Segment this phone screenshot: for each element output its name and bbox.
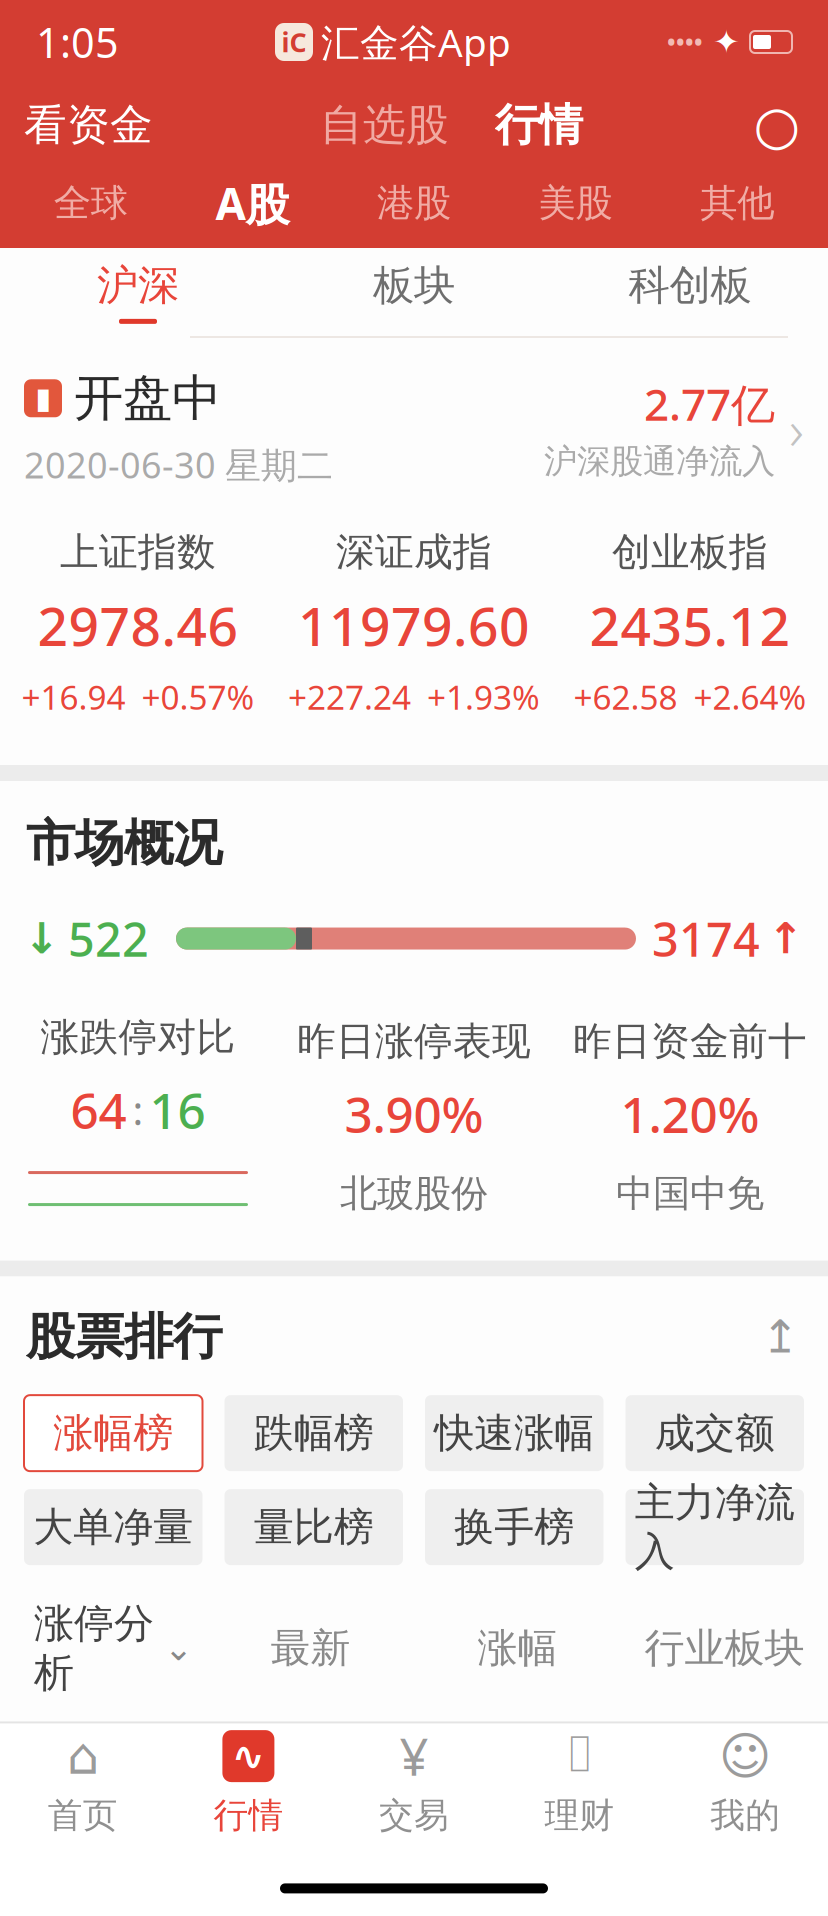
button[interactable]: 深证成指	[276, 528, 552, 719]
button[interactable]: 量比榜	[224, 1489, 403, 1565]
staticText: ⌂	[67, 1727, 99, 1785]
staticText: 交易	[379, 1794, 449, 1837]
button[interactable]: 昨日资金前十	[552, 1018, 828, 1216]
staticText: ↥	[761, 1311, 799, 1363]
button[interactable]: 创业板指	[552, 528, 828, 719]
staticText: 2435.12	[589, 590, 790, 661]
staticText: 科创板	[628, 260, 751, 311]
button[interactable]: 主力净流入	[625, 1489, 804, 1565]
staticText: 涨幅	[477, 1624, 557, 1673]
staticText: 64	[70, 1077, 126, 1142]
button[interactable]: 港股	[333, 166, 495, 240]
button[interactable]: 行业板块	[621, 1624, 828, 1673]
staticText: 汇金谷App	[321, 16, 511, 68]
staticText: 16	[149, 1077, 205, 1142]
button[interactable]: 涨幅	[414, 1624, 621, 1673]
staticText: iC	[281, 24, 306, 60]
staticText: 沪深股通净流入	[544, 441, 775, 482]
staticText: 理财	[545, 1794, 615, 1837]
staticText: 首页	[48, 1794, 118, 1837]
button[interactable]: ⌂	[0, 1723, 166, 1843]
staticText: 我的	[710, 1794, 780, 1837]
button[interactable]: ☺	[662, 1723, 828, 1843]
staticText: 3174	[652, 908, 760, 970]
staticText: 深证成指	[336, 528, 492, 576]
button[interactable]: 沪深	[0, 248, 276, 336]
button[interactable]: ∿	[166, 1723, 331, 1843]
staticText: :	[132, 1083, 143, 1136]
staticText: 股票排行	[26, 1307, 222, 1367]
staticText: +62.58	[573, 675, 677, 719]
staticText: 2978.46	[37, 590, 238, 661]
staticText: 换手榜	[454, 1503, 574, 1552]
button[interactable]: 跌幅榜	[224, 1395, 403, 1471]
staticText: ∿	[231, 1733, 265, 1779]
button[interactable]: 行情	[495, 98, 583, 152]
staticText: +1.93%	[427, 675, 540, 719]
button[interactable]: 收起	[758, 1315, 802, 1359]
staticText: +16.94	[21, 675, 125, 719]
staticText: 涨跌停对比	[40, 1014, 235, 1061]
staticText: 开盘中	[74, 368, 221, 429]
button[interactable]: 换手榜	[425, 1489, 603, 1565]
button[interactable]: 成交额	[625, 1395, 804, 1471]
staticText: ••••	[667, 27, 703, 57]
staticText: 美股	[539, 180, 613, 226]
staticText: 2.77亿	[644, 374, 775, 433]
staticText: A股	[215, 174, 289, 232]
staticText: 昨日资金前十	[573, 1018, 807, 1065]
staticText: ▮	[35, 382, 51, 415]
staticText: ⌷	[565, 1731, 595, 1781]
staticText: 最新	[270, 1624, 350, 1673]
staticText: 昨日涨停表现	[297, 1018, 531, 1065]
staticText: ☺	[719, 1727, 772, 1785]
button[interactable]: 快速涨幅	[425, 1395, 603, 1471]
staticText: ↓	[24, 914, 60, 963]
button[interactable]: 科创板	[552, 248, 828, 336]
staticText: 板块	[373, 260, 455, 311]
staticText: 大单净量	[33, 1503, 193, 1552]
staticText: ›	[789, 391, 804, 465]
button[interactable]: 美股	[495, 166, 656, 240]
staticText: 快速涨幅	[434, 1409, 594, 1458]
button[interactable]: 板块	[276, 248, 552, 336]
staticText: 主力净流入	[635, 1478, 795, 1576]
button[interactable]: 昨日涨停表现	[276, 1018, 552, 1216]
button[interactable]: 上证指数	[0, 528, 276, 719]
staticText: 量比榜	[254, 1503, 374, 1552]
staticText: +227.24	[288, 675, 411, 719]
staticText: 上证指数	[60, 528, 216, 576]
staticText: 成交额	[655, 1409, 775, 1458]
button[interactable]: ⌷	[497, 1723, 662, 1843]
button[interactable]: 搜索	[750, 98, 804, 152]
button[interactable]: 全球	[10, 166, 172, 240]
button[interactable]: A股	[172, 166, 333, 240]
button[interactable]: ▮	[0, 338, 828, 504]
staticText: ○	[753, 95, 800, 155]
button[interactable]: 最新	[207, 1624, 414, 1673]
button[interactable]: 大单净量	[24, 1489, 202, 1565]
staticText: 行情	[213, 1794, 283, 1837]
button[interactable]: 自选股	[320, 99, 449, 151]
staticText: 港股	[377, 180, 451, 226]
staticText: 沪深	[97, 260, 179, 311]
button[interactable]: 其他	[656, 166, 818, 240]
staticText: +0.57%	[141, 675, 254, 719]
button[interactable]: 涨跌停对比	[0, 1014, 276, 1221]
staticText: 北玻股份	[340, 1171, 488, 1216]
staticText: +2.64%	[693, 675, 806, 719]
staticText: ⌄	[164, 1629, 193, 1668]
staticText: 创业板指	[612, 528, 768, 576]
staticText: 1.20%	[620, 1081, 759, 1147]
button[interactable]: 涨停分析	[0, 1599, 207, 1697]
button[interactable]: 涨幅榜	[24, 1395, 202, 1471]
staticText: ¥	[399, 1722, 428, 1790]
staticText: ↑	[768, 914, 804, 963]
staticText: 522	[68, 908, 149, 970]
button[interactable]: 看资金	[24, 99, 153, 151]
staticText: 11979.60	[298, 590, 530, 661]
staticText: 市场概况	[26, 813, 222, 874]
staticText: 行业板块	[644, 1624, 804, 1673]
staticText: 其他	[700, 180, 774, 226]
button[interactable]: ¥	[331, 1723, 497, 1843]
